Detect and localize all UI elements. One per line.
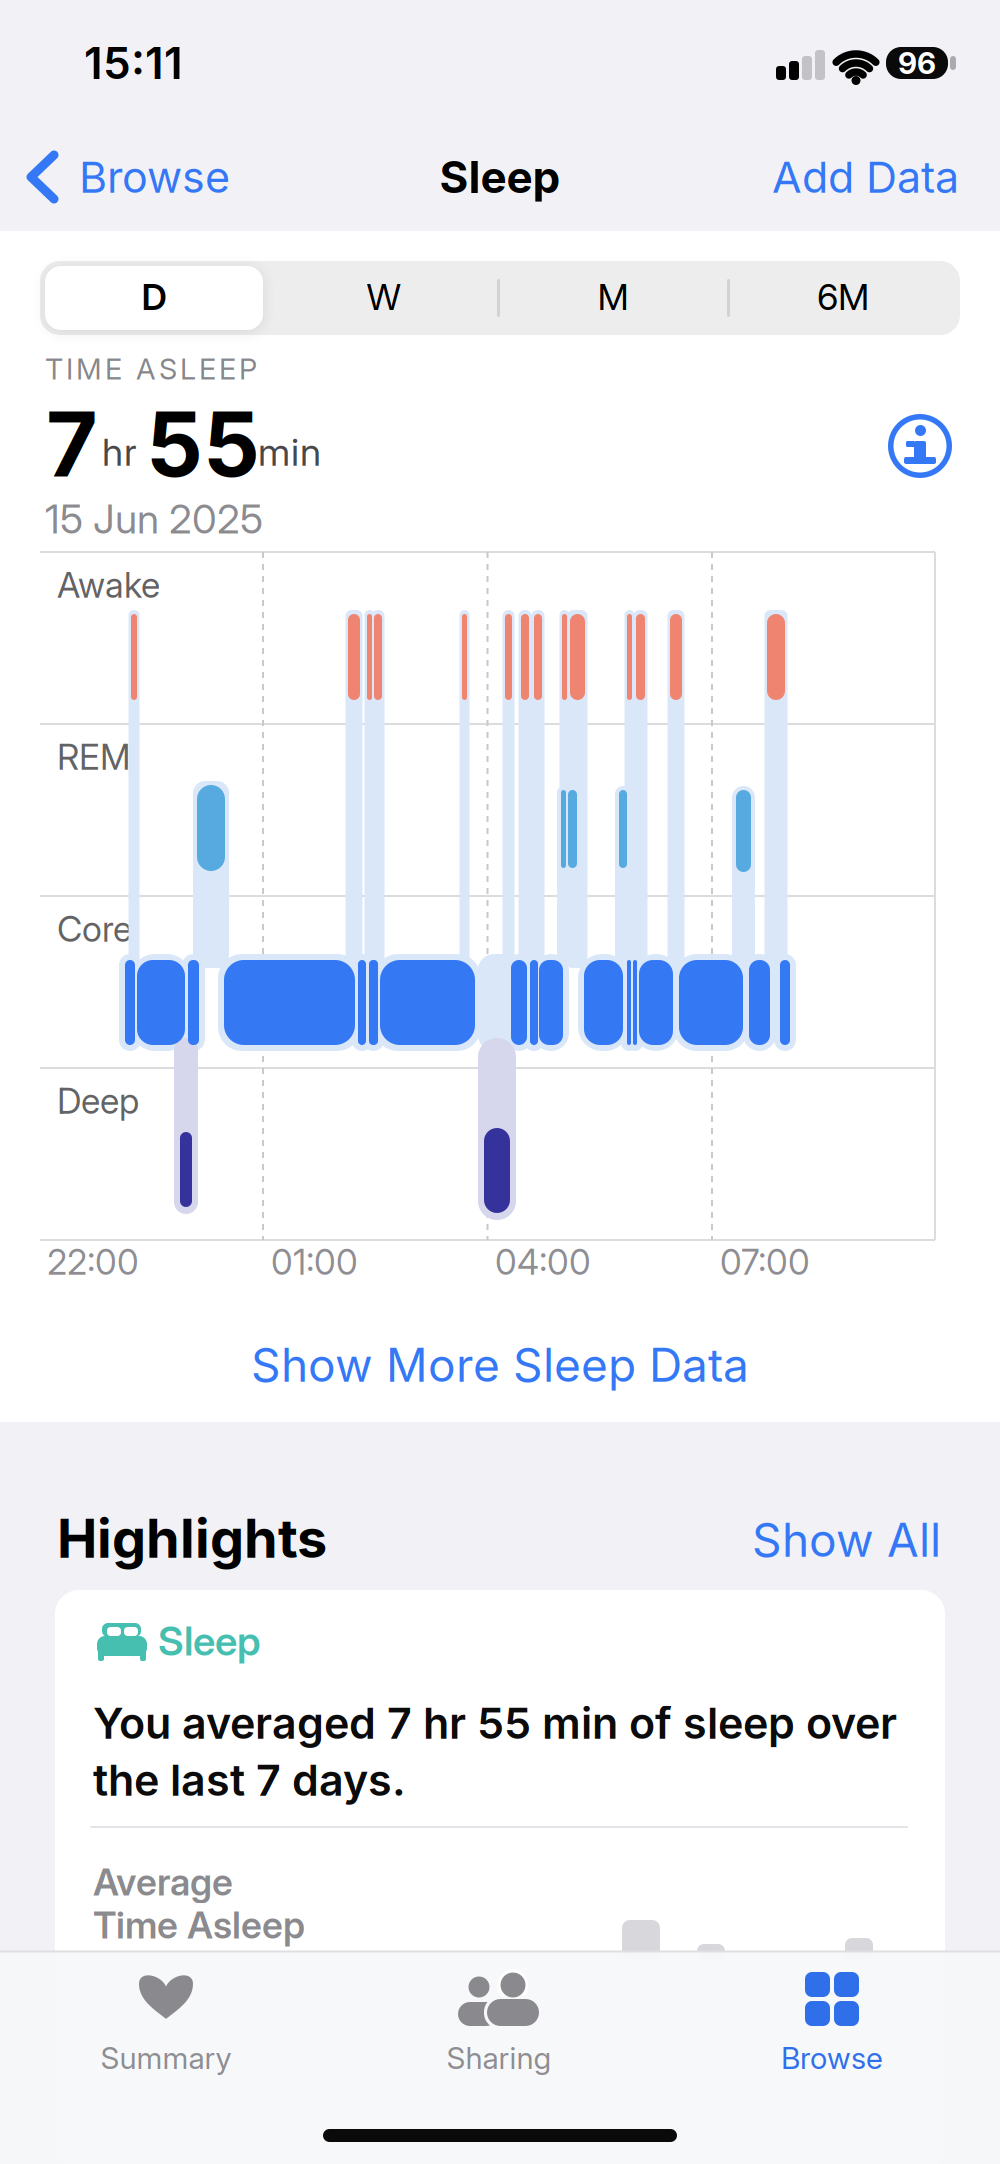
staticText: 55 xyxy=(146,390,260,498)
staticText: You averaged 7 hr 55 min of sleep over xyxy=(93,1697,897,1749)
staticText: M xyxy=(597,275,628,319)
button[interactable]: Show More Sleep Data xyxy=(0,0,1000,2164)
staticText: Average xyxy=(93,1860,233,1904)
staticText: Deep xyxy=(57,1080,139,1122)
staticText: 7 xyxy=(46,390,98,498)
staticText: D xyxy=(141,275,166,319)
staticText: Awake xyxy=(57,564,160,606)
staticText: hr xyxy=(102,429,137,475)
button[interactable]: Browse xyxy=(0,0,1000,2164)
staticText: Sleep xyxy=(439,150,560,204)
button[interactable]: D xyxy=(0,0,1000,2164)
staticText: Summary xyxy=(100,2040,231,2076)
button[interactable]: Summary xyxy=(0,0,1000,2164)
staticText: Core xyxy=(57,908,132,950)
staticText: 96 xyxy=(898,45,936,81)
button[interactable]: Show All xyxy=(0,0,1000,2164)
staticText: 07:00 xyxy=(720,1241,810,1283)
button[interactable]: Add Data xyxy=(0,0,1000,2164)
staticText: Highlights xyxy=(57,1505,327,1571)
button[interactable]: M xyxy=(0,0,1000,2164)
staticText: W xyxy=(366,275,401,319)
button[interactable]: Browse xyxy=(0,0,1000,2164)
staticText: 15:11 xyxy=(84,36,183,90)
button[interactable]: 6M xyxy=(0,0,1000,2164)
staticText: 15 Jun 2025 xyxy=(45,495,263,543)
staticText: min xyxy=(258,429,321,475)
button[interactable] xyxy=(0,0,1000,2164)
staticText: REM xyxy=(57,736,131,778)
staticText: Time Asleep xyxy=(93,1903,305,1947)
staticText: Sleep xyxy=(158,1617,261,1665)
staticText: Add Data xyxy=(772,151,959,203)
button[interactable] xyxy=(0,0,1000,2164)
staticText: the last 7 days. xyxy=(93,1754,406,1806)
staticText: Sharing xyxy=(446,2040,551,2076)
staticText: Show All xyxy=(752,1512,941,1568)
button[interactable]: Sharing xyxy=(0,0,1000,2164)
staticText: 6M xyxy=(817,275,869,319)
staticText: 01:00 xyxy=(271,1241,358,1283)
staticText: 22:00 xyxy=(47,1241,139,1283)
staticText: Show More Sleep Data xyxy=(251,1337,749,1393)
button[interactable]: W xyxy=(0,0,1000,2164)
staticText: Browse xyxy=(79,151,230,203)
staticText: TIME ASLEEP xyxy=(45,351,257,387)
staticText: Browse xyxy=(781,2040,883,2076)
staticText: 04:00 xyxy=(495,1241,591,1283)
